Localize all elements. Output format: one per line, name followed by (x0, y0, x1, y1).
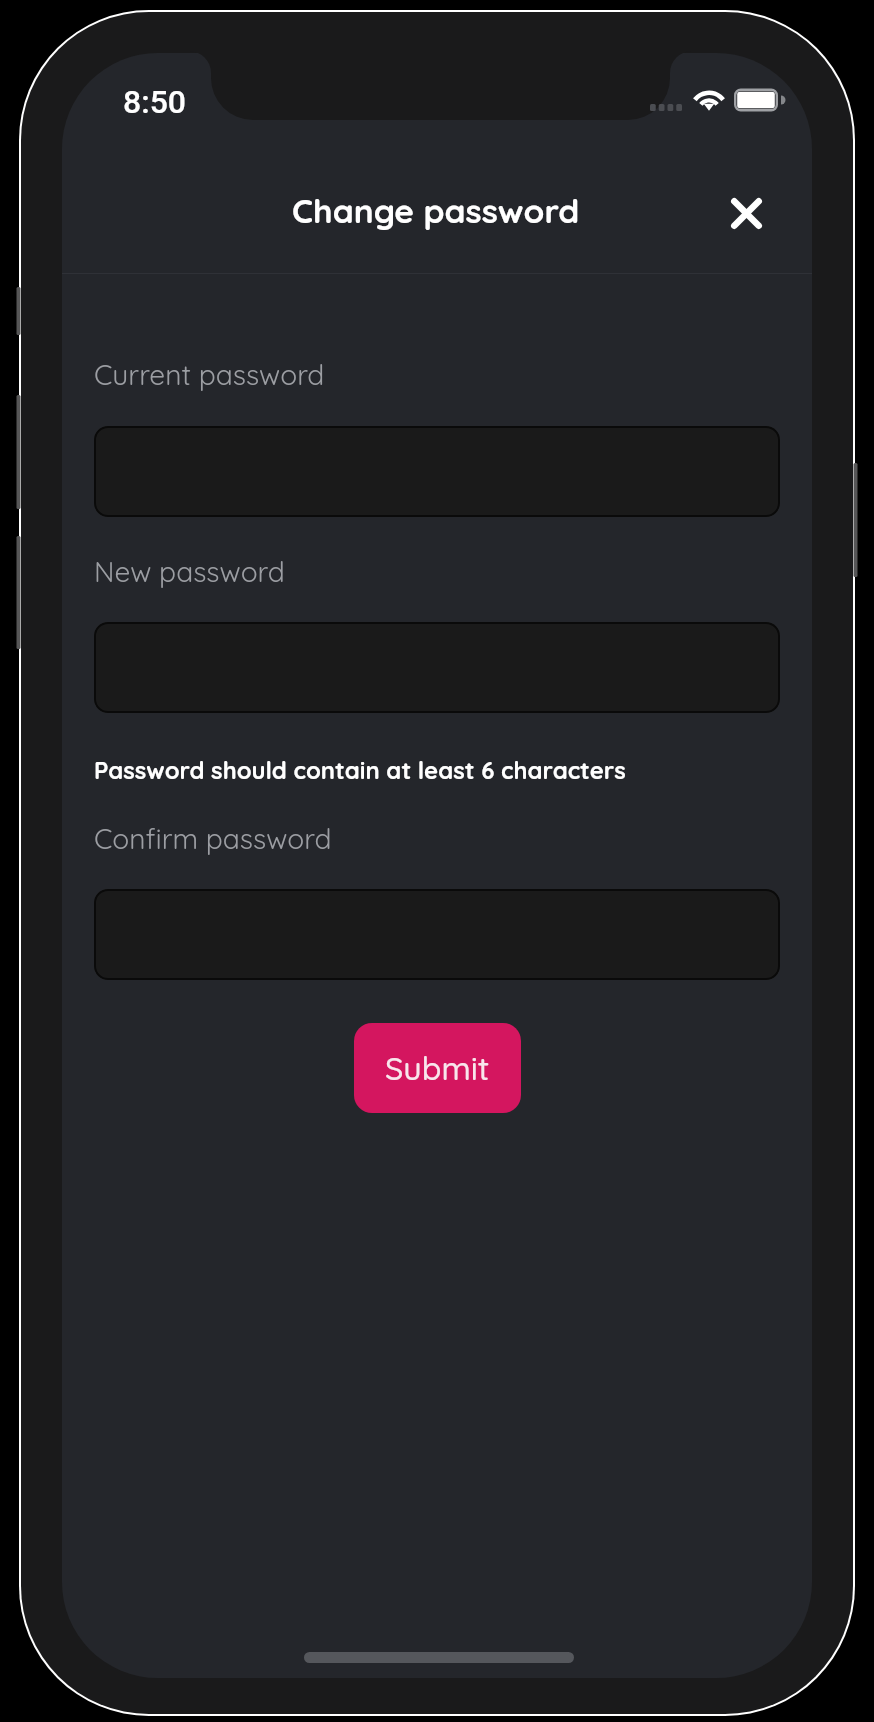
staticText: Confirm password (94, 821, 332, 856)
staticText: Submit (385, 1048, 490, 1088)
button[interactable] (94, 426, 780, 517)
button[interactable]: Close (715, 182, 777, 244)
staticText: Current password (94, 357, 325, 392)
button[interactable] (94, 889, 780, 980)
staticText: New password (94, 554, 285, 589)
button[interactable]: Submit (354, 1023, 521, 1113)
staticText: 8:50 (123, 83, 186, 121)
staticText: Password should contain at least 6 chara… (94, 755, 626, 785)
button[interactable] (94, 622, 780, 713)
staticText: Change password (292, 189, 580, 231)
